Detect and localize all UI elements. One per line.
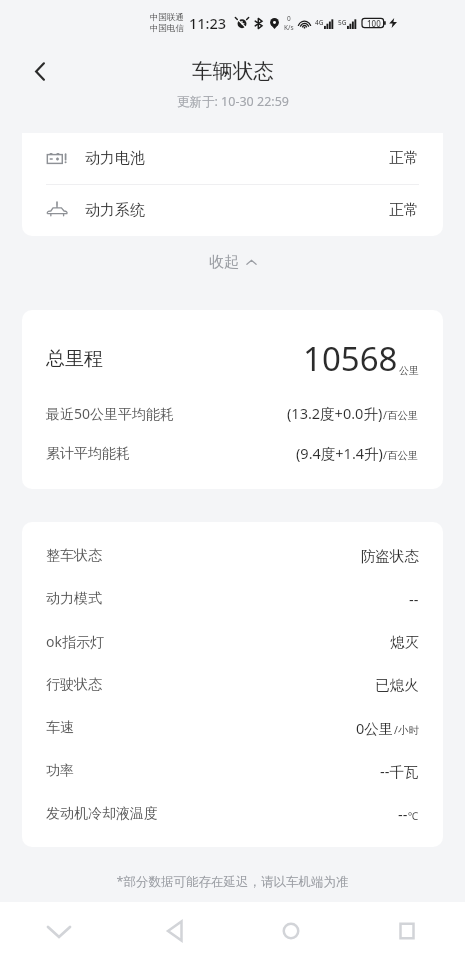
staticText: 中国联通 — [150, 12, 184, 23]
staticText: 防盗状态 — [361, 547, 419, 565]
button[interactable]: 动力电池 — [22, 133, 443, 184]
button[interactable]: Recents — [349, 902, 465, 960]
staticText: /百公里 — [383, 448, 419, 462]
staticText: 0 — [287, 14, 291, 23]
staticText: 总里程 — [46, 347, 103, 371]
staticText: 公里 — [399, 364, 419, 377]
staticText: 11:23 — [189, 13, 227, 33]
button[interactable]: 车速 — [46, 706, 419, 749]
button[interactable]: Hide keyboard — [0, 902, 117, 960]
staticText: 正常 — [389, 201, 419, 220]
staticText: --千瓦 — [380, 761, 419, 781]
staticText: -- — [398, 804, 408, 824]
staticText: (9.4度+1.4升) — [296, 443, 383, 463]
staticText: 行驶状态 — [46, 676, 102, 694]
button[interactable]: Back — [18, 49, 62, 93]
staticText: 车速 — [46, 719, 74, 737]
staticText: -- — [409, 589, 419, 609]
button[interactable]: ok指示灯 — [46, 620, 419, 663]
staticText: 功率 — [46, 762, 74, 780]
staticText: 100 — [367, 18, 381, 29]
staticText: ℃ — [408, 809, 419, 823]
staticText: 中国电信 — [150, 23, 184, 34]
staticText: 动力电池 — [85, 149, 145, 168]
staticText: /小时 — [394, 723, 419, 737]
staticText: /百公里 — [383, 408, 419, 422]
staticText: 熄灭 — [390, 633, 419, 651]
staticText: 正常 — [389, 149, 419, 168]
staticText: 动力系统 — [85, 201, 145, 220]
staticText: 车辆状态 — [192, 58, 274, 84]
button[interactable]: Back — [117, 902, 233, 960]
button[interactable]: 动力模式 — [46, 577, 419, 620]
staticText: 5G — [338, 18, 347, 27]
staticText: 更新于: 10-30 22:59 — [177, 93, 289, 110]
button[interactable]: 动力系统 — [22, 185, 443, 236]
staticText: (13.2度+0.0升) — [287, 403, 383, 423]
button[interactable]: 功率 — [46, 749, 419, 792]
staticText: *部分数据可能存在延迟，请以车机端为准 — [0, 873, 465, 890]
button[interactable]: 整车状态 — [46, 534, 419, 577]
staticText: 最近50公里平均能耗 — [46, 404, 175, 423]
staticText: 收起 — [209, 253, 239, 272]
button[interactable]: 收起 — [0, 236, 465, 288]
button[interactable]: 发动机冷却液温度 — [46, 792, 419, 835]
staticText: 整车状态 — [46, 547, 102, 565]
staticText: 累计平均能耗 — [46, 445, 130, 463]
staticText: ok指示灯 — [46, 632, 104, 651]
staticText: K/s — [284, 23, 294, 32]
staticText: 已熄火 — [375, 676, 419, 694]
staticText: 动力模式 — [46, 590, 102, 608]
staticText: 0公里 — [356, 718, 394, 738]
button[interactable]: Home — [233, 902, 349, 960]
button[interactable]: 行驶状态 — [46, 663, 419, 706]
staticText: 4G — [315, 18, 324, 27]
staticText: 10568 — [303, 336, 398, 381]
staticText: 发动机冷却液温度 — [46, 805, 158, 823]
